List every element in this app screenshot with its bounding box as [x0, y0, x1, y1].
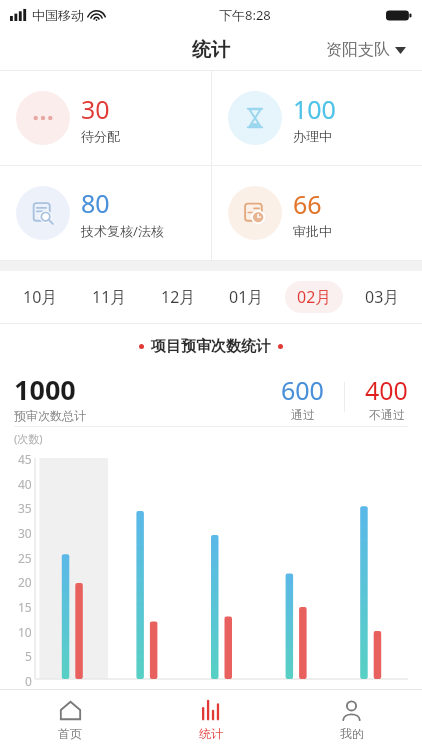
staticText: 预审次数总计: [14, 408, 86, 423]
staticText: 20: [18, 574, 32, 590]
button[interactable]: 03月: [353, 281, 411, 313]
staticText: 1000: [14, 371, 76, 408]
staticText: 首页: [58, 726, 82, 741]
button[interactable]: 11月: [80, 281, 139, 313]
staticText: 30: [18, 525, 32, 541]
staticText: 30: [81, 92, 110, 126]
button[interactable]: 10月: [11, 281, 70, 313]
staticText: 400: [365, 373, 408, 407]
staticText: 40: [18, 476, 32, 492]
staticText: 不通过: [369, 407, 405, 422]
staticText: 12月: [161, 286, 196, 308]
staticText: (次数): [14, 431, 43, 446]
staticText: 技术复核/法核: [81, 222, 164, 240]
staticText: 66: [293, 187, 322, 221]
staticText: 统计: [192, 38, 230, 62]
staticText: 15: [18, 599, 32, 615]
staticText: 02月: [297, 286, 332, 308]
staticText: 项目预审次数统计: [151, 337, 271, 356]
staticText: 10月: [23, 286, 58, 308]
staticText: 25: [18, 550, 32, 566]
staticText: 待分配: [81, 128, 120, 144]
staticText: 0: [25, 673, 32, 689]
staticText: 45: [18, 451, 32, 467]
staticText: 80: [81, 186, 110, 220]
staticText: 下午8:28: [219, 6, 271, 24]
staticText: 中国移动: [32, 7, 84, 23]
staticText: 11月: [92, 286, 127, 308]
button[interactable]: 统计: [140, 690, 281, 750]
staticText: 5: [25, 648, 32, 664]
staticText: 通过: [291, 407, 315, 422]
button[interactable]: 资阳支队: [322, 36, 410, 64]
staticText: 10: [18, 624, 32, 640]
staticText: 我的: [340, 726, 364, 741]
staticText: 01月: [229, 286, 264, 308]
button[interactable]: 80: [0, 166, 211, 260]
staticText: 审批中: [293, 223, 332, 239]
staticText: 资阳支队: [326, 40, 390, 60]
button[interactable]: 我的: [281, 690, 422, 750]
staticText: 办理中: [293, 128, 332, 144]
staticText: 600: [281, 373, 324, 407]
button[interactable]: 首页: [0, 690, 140, 750]
staticText: 统计: [199, 726, 223, 741]
staticText: 35: [18, 500, 32, 516]
button[interactable]: 01月: [217, 281, 275, 313]
staticText: 100: [293, 92, 336, 126]
button[interactable]: 66: [212, 166, 422, 260]
staticText: 03月: [365, 286, 400, 308]
button[interactable]: 02月: [285, 281, 343, 313]
button[interactable]: 12月: [149, 281, 207, 313]
button[interactable]: 100: [212, 71, 422, 165]
button[interactable]: 30: [0, 71, 211, 165]
